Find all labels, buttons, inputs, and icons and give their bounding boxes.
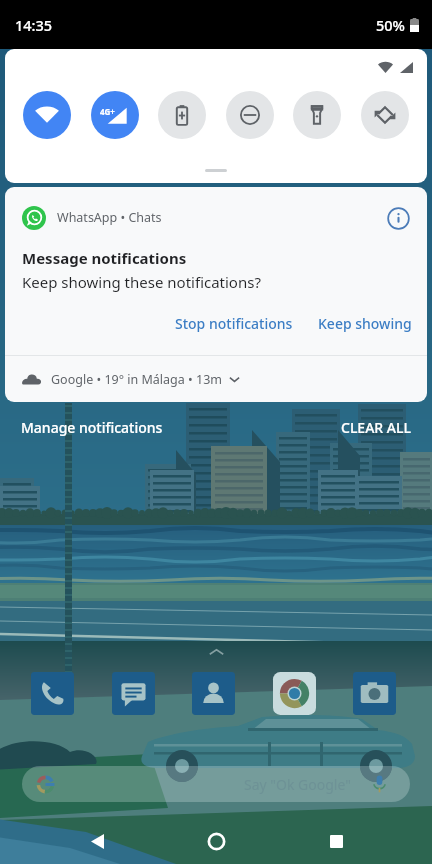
staticText: 14:35 bbox=[15, 15, 53, 35]
staticText: 4G+ bbox=[100, 106, 115, 117]
button[interactable]: Do not disturb bbox=[226, 91, 274, 139]
button[interactable]: Info bbox=[385, 205, 411, 231]
staticText: Message notifications bbox=[22, 248, 187, 268]
button[interactable]: Messages bbox=[112, 672, 155, 715]
button[interactable]: Camera bbox=[353, 672, 396, 715]
button[interactable]: Stop notifications bbox=[169, 308, 299, 339]
button[interactable]: Keep showing bbox=[312, 308, 418, 339]
button[interactable]: Google • 19° in Málaga • 13m bbox=[5, 356, 427, 402]
button[interactable]: Home bbox=[193, 818, 239, 864]
button[interactable]: Say "Ok Google" bbox=[22, 766, 410, 802]
staticText: Google • 19° in Málaga • 13m bbox=[51, 371, 222, 388]
button[interactable]: Auto-rotate bbox=[361, 91, 409, 139]
button[interactable]: Chrome bbox=[273, 672, 316, 715]
button[interactable]: Mobile data bbox=[91, 91, 139, 139]
button[interactable]: Battery saver bbox=[158, 91, 206, 139]
staticText: 50% bbox=[376, 15, 405, 35]
button[interactable]: Wi-Fi bbox=[23, 91, 71, 139]
staticText: Say "Ok Google" bbox=[244, 775, 351, 794]
button[interactable]: Recents bbox=[313, 818, 359, 864]
button[interactable]: Flashlight bbox=[293, 91, 341, 139]
button[interactable]: Contacts bbox=[192, 672, 235, 715]
staticText: Keep showing these notifications? bbox=[22, 272, 261, 292]
staticText: CLEAR ALL bbox=[341, 418, 411, 437]
staticText: Manage notifications bbox=[21, 418, 163, 437]
button[interactable]: Manage notifications bbox=[21, 418, 163, 437]
staticText: Stop notifications bbox=[175, 314, 293, 333]
button[interactable]: CLEAR ALL bbox=[341, 418, 411, 437]
button[interactable]: Phone bbox=[31, 672, 74, 715]
staticText: WhatsApp • Chats bbox=[57, 209, 162, 226]
button[interactable]: Back bbox=[74, 818, 120, 864]
button[interactable]: WhatsApp • Chats bbox=[5, 187, 427, 248]
staticText: Keep showing bbox=[318, 314, 412, 333]
